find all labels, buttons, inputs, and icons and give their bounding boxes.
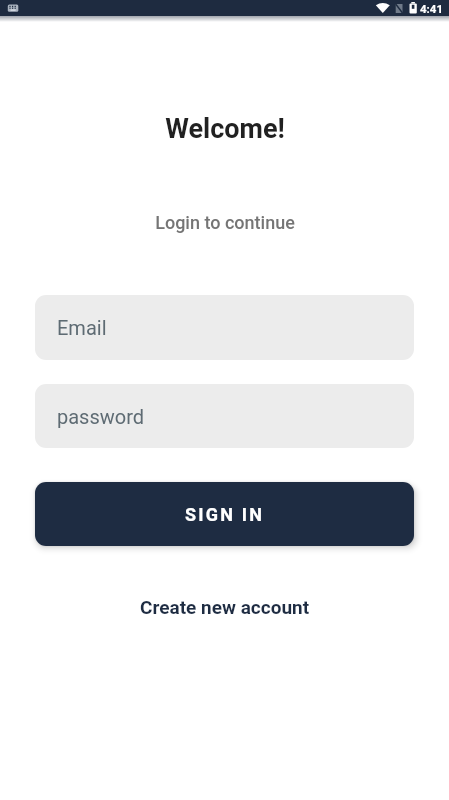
staticText: Login to continue — [155, 212, 295, 233]
staticText: Welcome! — [165, 113, 285, 145]
button[interactable]: SIGN IN — [35, 482, 414, 546]
staticText: password — [57, 405, 145, 428]
staticText: Email — [57, 316, 107, 339]
staticText: SIGN IN — [185, 504, 265, 525]
button[interactable]: Create new account — [140, 596, 310, 618]
button[interactable]: Email — [35, 295, 414, 360]
button[interactable]: password — [35, 384, 414, 448]
staticText: Create new account — [140, 596, 310, 618]
staticText: 4:41 — [420, 2, 444, 15]
